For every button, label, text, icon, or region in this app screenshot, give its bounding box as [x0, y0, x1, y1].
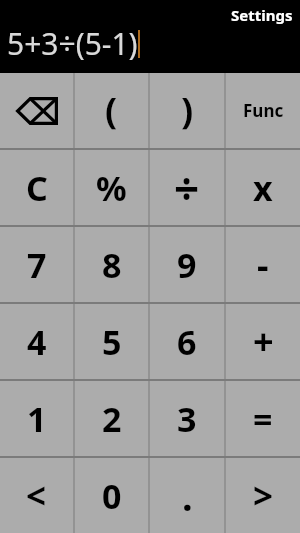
staticText: = — [253, 396, 273, 442]
button[interactable]: + — [226, 304, 300, 379]
staticText: ÷ — [174, 158, 200, 218]
staticText: 5 — [102, 319, 122, 365]
staticText: 8 — [102, 242, 122, 288]
staticText: + — [253, 317, 274, 366]
button[interactable]: > — [226, 458, 300, 533]
staticText: Func — [243, 99, 284, 122]
staticText: C — [26, 165, 48, 211]
staticText: < — [26, 472, 47, 520]
button[interactable]: 9 — [150, 227, 224, 302]
staticText: . — [182, 470, 193, 522]
staticText: 2 — [102, 396, 122, 442]
button[interactable]: < — [0, 458, 73, 533]
staticText: 1 — [27, 396, 47, 442]
button[interactable]: 0 — [75, 458, 148, 533]
staticText: 9 — [177, 242, 197, 288]
staticText: 3 — [177, 396, 197, 442]
button[interactable]: 1 — [0, 381, 73, 456]
staticText: 5+3÷(5-1) — [7, 23, 138, 64]
button[interactable] — [0, 73, 73, 148]
button[interactable]: 7 — [0, 227, 73, 302]
button[interactable]: ) — [150, 73, 224, 148]
staticText: % — [96, 165, 127, 211]
button[interactable]: 6 — [150, 304, 224, 379]
button[interactable]: x — [226, 150, 300, 225]
button[interactable]: Func — [226, 73, 300, 148]
staticText: - — [257, 240, 269, 289]
button[interactable]: ( — [75, 73, 148, 148]
button[interactable]: 5 — [75, 304, 148, 379]
staticText: 4 — [27, 319, 47, 365]
button[interactable]: % — [75, 150, 148, 225]
staticText: ( — [105, 86, 118, 135]
button[interactable]: = — [226, 381, 300, 456]
button[interactable]: 3 — [150, 381, 224, 456]
button[interactable]: ÷ — [150, 150, 224, 225]
button[interactable]: 8 — [75, 227, 148, 302]
staticText: 7 — [27, 242, 47, 288]
staticText: > — [253, 472, 274, 520]
button[interactable]: - — [226, 227, 300, 302]
button[interactable]: . — [150, 458, 224, 533]
staticText: x — [253, 165, 273, 211]
button[interactable]: 2 — [75, 381, 148, 456]
staticText: 0 — [102, 473, 122, 519]
button[interactable]: Settings — [231, 5, 293, 25]
button[interactable]: C — [0, 150, 73, 225]
staticText: 6 — [177, 319, 197, 365]
staticText: Settings — [231, 5, 293, 25]
button[interactable]: 4 — [0, 304, 73, 379]
staticText: ) — [181, 86, 194, 135]
